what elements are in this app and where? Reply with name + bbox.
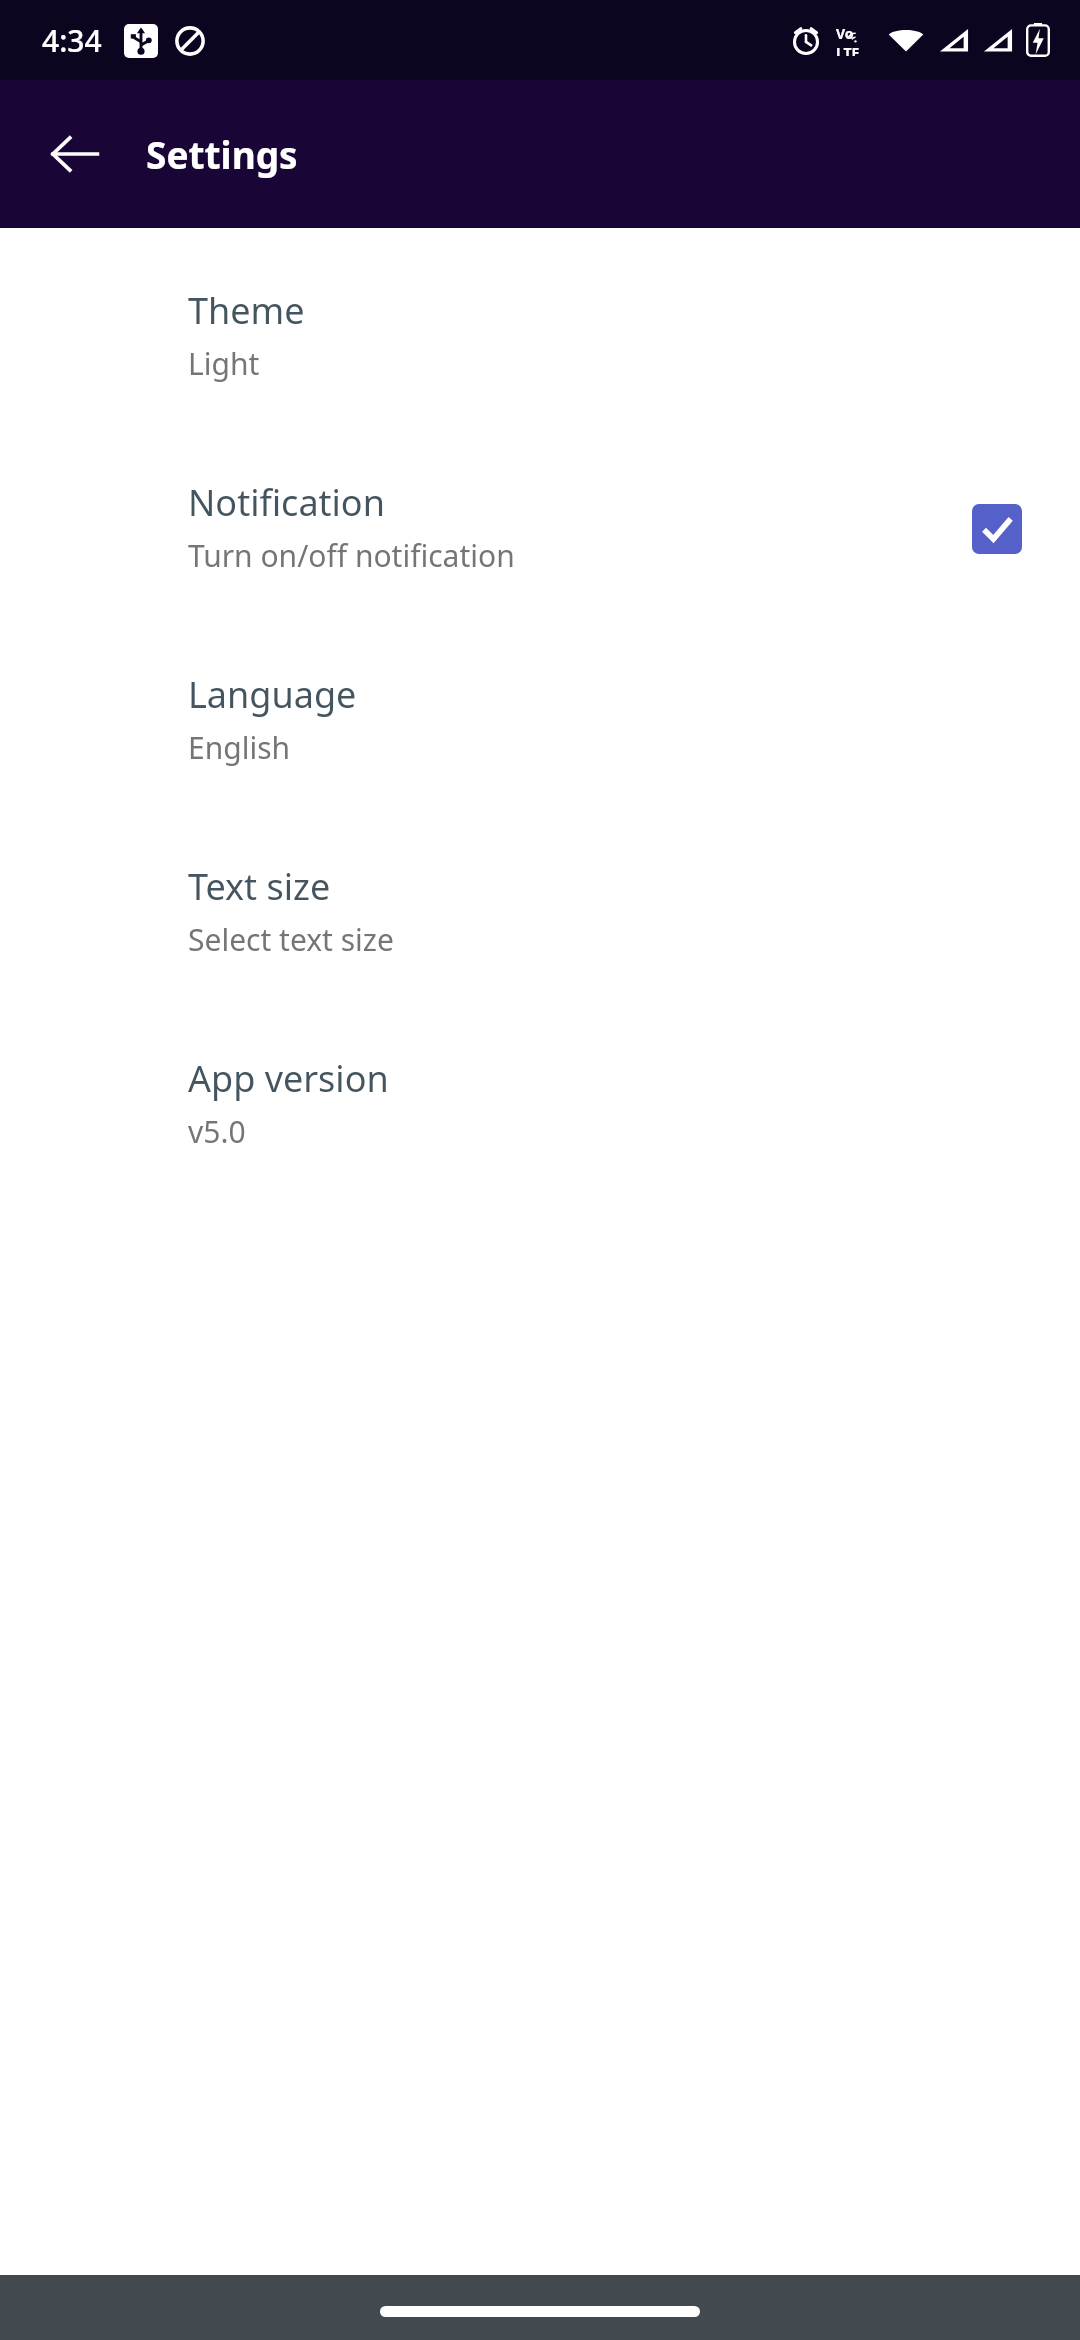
staticText: Text size <box>188 862 331 911</box>
button[interactable]: Notification <box>0 460 1080 652</box>
button[interactable]: Notification enabled <box>972 504 1022 554</box>
staticText: Notification <box>188 478 385 527</box>
staticText: Turn on/off notification <box>188 535 515 576</box>
button[interactable]: Text size <box>0 844 1080 1036</box>
staticText: LTE <box>836 43 860 56</box>
button[interactable]: Theme <box>0 268 1080 460</box>
staticText: Vo <box>836 24 854 43</box>
staticText: Light <box>188 343 260 384</box>
staticText: English <box>188 727 291 768</box>
staticText: v5.0 <box>188 1111 246 1152</box>
staticText: Select text size <box>188 919 394 960</box>
button[interactable]: Back <box>40 119 110 189</box>
staticText: App version <box>188 1054 389 1103</box>
staticText: Language <box>188 670 357 719</box>
staticText: Theme <box>188 286 305 335</box>
staticText: Settings <box>146 129 298 179</box>
button[interactable]: App version <box>0 1036 1080 1228</box>
staticText: 4:34 <box>42 20 102 61</box>
button[interactable]: Home <box>380 2306 700 2317</box>
button[interactable]: Language <box>0 652 1080 844</box>
